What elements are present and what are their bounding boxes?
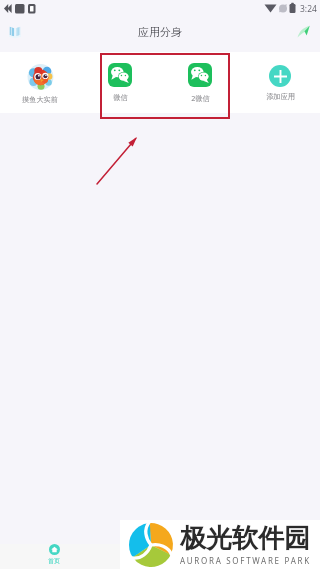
staticText: 极光软件园 bbox=[180, 522, 310, 555]
button[interactable]: 摸鱼大实前 bbox=[0, 52, 80, 113]
staticText: 应用分身 bbox=[138, 25, 182, 39]
staticText: 首页 bbox=[48, 557, 60, 565]
staticText: 微信 bbox=[113, 93, 128, 102]
button[interactable]: User manual bbox=[2, 19, 28, 45]
staticText: 2微信 bbox=[191, 93, 210, 103]
staticText: 3:24 bbox=[300, 3, 317, 15]
staticText: AURORA SOFTWARE PARK bbox=[180, 555, 311, 566]
staticText: 摸鱼大实前 bbox=[22, 95, 58, 104]
button[interactable]: Share bbox=[290, 18, 316, 44]
staticText: 添加应用 bbox=[266, 92, 295, 101]
button[interactable]: 首页 bbox=[37, 544, 71, 565]
button[interactable]: 添加应用 bbox=[240, 52, 320, 113]
button[interactable]: 微信 bbox=[80, 52, 160, 113]
button[interactable]: 2微信 bbox=[160, 52, 240, 113]
